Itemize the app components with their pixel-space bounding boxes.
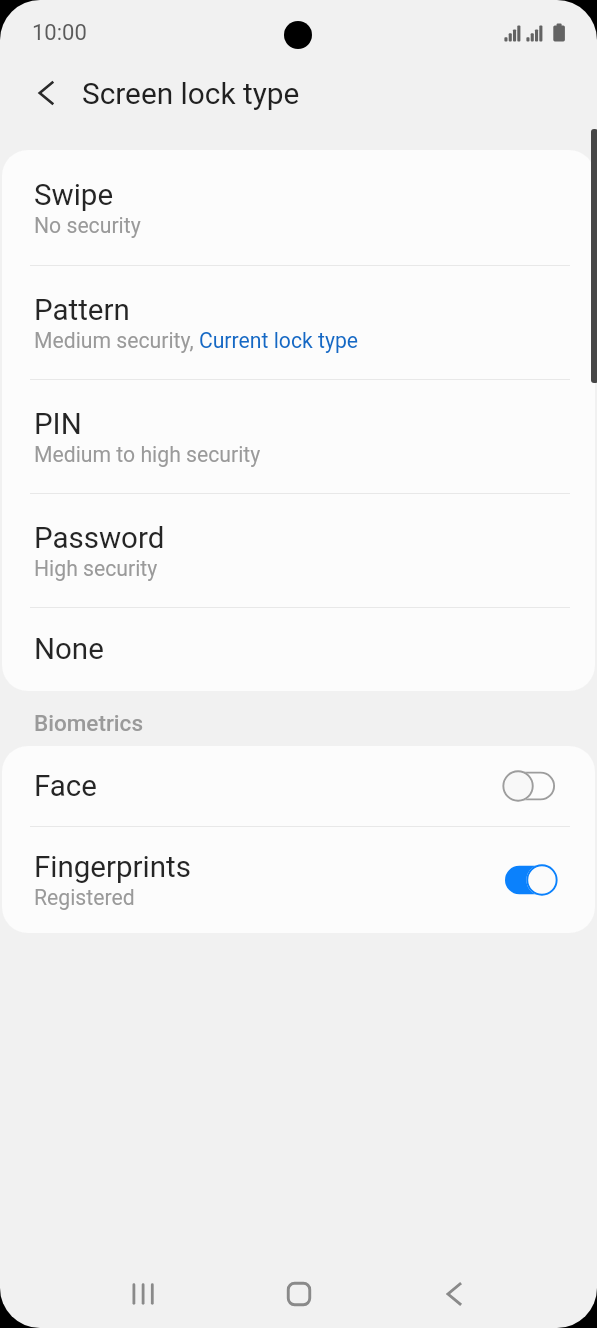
staticText: Biometrics xyxy=(34,710,144,736)
button[interactable]: Fingerprints xyxy=(2,827,595,933)
staticText: Registered xyxy=(34,885,135,910)
staticText: Face xyxy=(34,769,97,804)
staticText: Pattern xyxy=(34,293,130,328)
button[interactable]: Back xyxy=(415,1255,493,1328)
staticText: Fingerprints xyxy=(34,850,191,885)
button[interactable]: Password xyxy=(2,494,595,607)
button[interactable]: Navigate up xyxy=(17,64,75,122)
staticText: Swipe xyxy=(34,178,114,213)
staticText: PIN xyxy=(34,407,82,442)
button[interactable]: Switch off xyxy=(503,768,561,804)
staticText: Medium to high security xyxy=(34,442,261,467)
button[interactable]: None xyxy=(2,608,595,691)
button[interactable]: Pattern xyxy=(2,266,595,379)
button[interactable]: Switch on xyxy=(503,862,561,898)
staticText: Password xyxy=(34,521,165,556)
staticText: None xyxy=(34,632,104,667)
button[interactable]: Face xyxy=(2,746,595,826)
button[interactable]: Recent apps xyxy=(105,1255,183,1328)
staticText: Medium security, Current lock type xyxy=(34,328,359,353)
staticText: Screen lock type xyxy=(82,76,300,111)
button[interactable]: Swipe xyxy=(2,150,595,265)
button[interactable]: Home xyxy=(260,1255,338,1328)
staticText: No security xyxy=(34,213,141,238)
button[interactable]: PIN xyxy=(2,380,595,493)
staticText: 10:00 xyxy=(32,20,87,46)
staticText: High security xyxy=(34,556,158,581)
